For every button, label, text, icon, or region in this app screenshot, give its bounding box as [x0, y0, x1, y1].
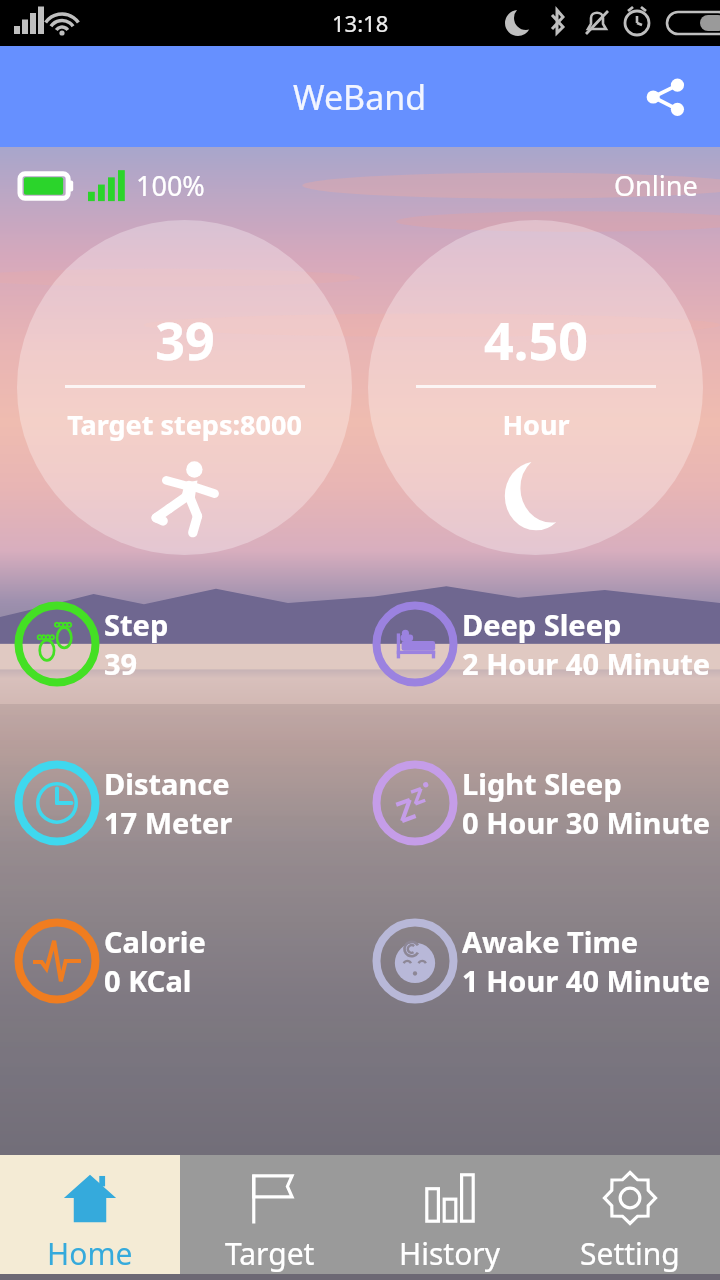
button[interactable]: Awake Time — [372, 918, 720, 1004]
button[interactable]: 39 — [17, 220, 352, 555]
staticText: 39 — [155, 304, 215, 375]
staticText: WeBand — [293, 74, 427, 120]
staticText: Target — [225, 1233, 315, 1274]
staticText: 4.50 — [484, 304, 588, 375]
staticText: Home — [47, 1233, 133, 1274]
button[interactable]: Setting — [540, 1155, 720, 1274]
staticText: Step — [104, 605, 169, 644]
button[interactable]: Distance — [14, 760, 360, 846]
button[interactable]: Step — [14, 601, 360, 687]
staticText: Target steps:8000 — [67, 406, 302, 443]
staticText: Deep Sleep — [462, 605, 622, 644]
staticText: Light Sleep — [462, 764, 622, 803]
staticText: History — [399, 1233, 501, 1274]
button[interactable]: History — [360, 1155, 540, 1274]
button[interactable]: Home — [0, 1155, 180, 1274]
staticText: Setting — [580, 1233, 680, 1274]
staticText: 13:18 — [332, 8, 389, 38]
button[interactable]: Target — [180, 1155, 360, 1274]
staticText: 100% — [136, 167, 205, 204]
button[interactable]: Calorie — [14, 918, 360, 1004]
button[interactable]: Light Sleep — [372, 760, 720, 846]
staticText: Awake Time — [462, 922, 639, 961]
staticText: Hour — [502, 406, 570, 443]
button[interactable]: Share — [630, 61, 702, 133]
staticText: 0 KCal — [104, 961, 192, 1000]
staticText: 2 Hour 40 Minute — [462, 644, 711, 683]
button[interactable]: Deep Sleep — [372, 601, 720, 687]
staticText: 17 Meter — [104, 803, 233, 842]
staticText: Online — [614, 167, 698, 204]
staticText: 1 Hour 40 Minute — [462, 961, 711, 1000]
staticText: 39 — [104, 644, 138, 683]
staticText: Calorie — [104, 922, 206, 961]
staticText: 0 Hour 30 Minute — [462, 803, 711, 842]
button[interactable]: 4.50 — [368, 220, 703, 555]
staticText: Distance — [104, 764, 230, 803]
